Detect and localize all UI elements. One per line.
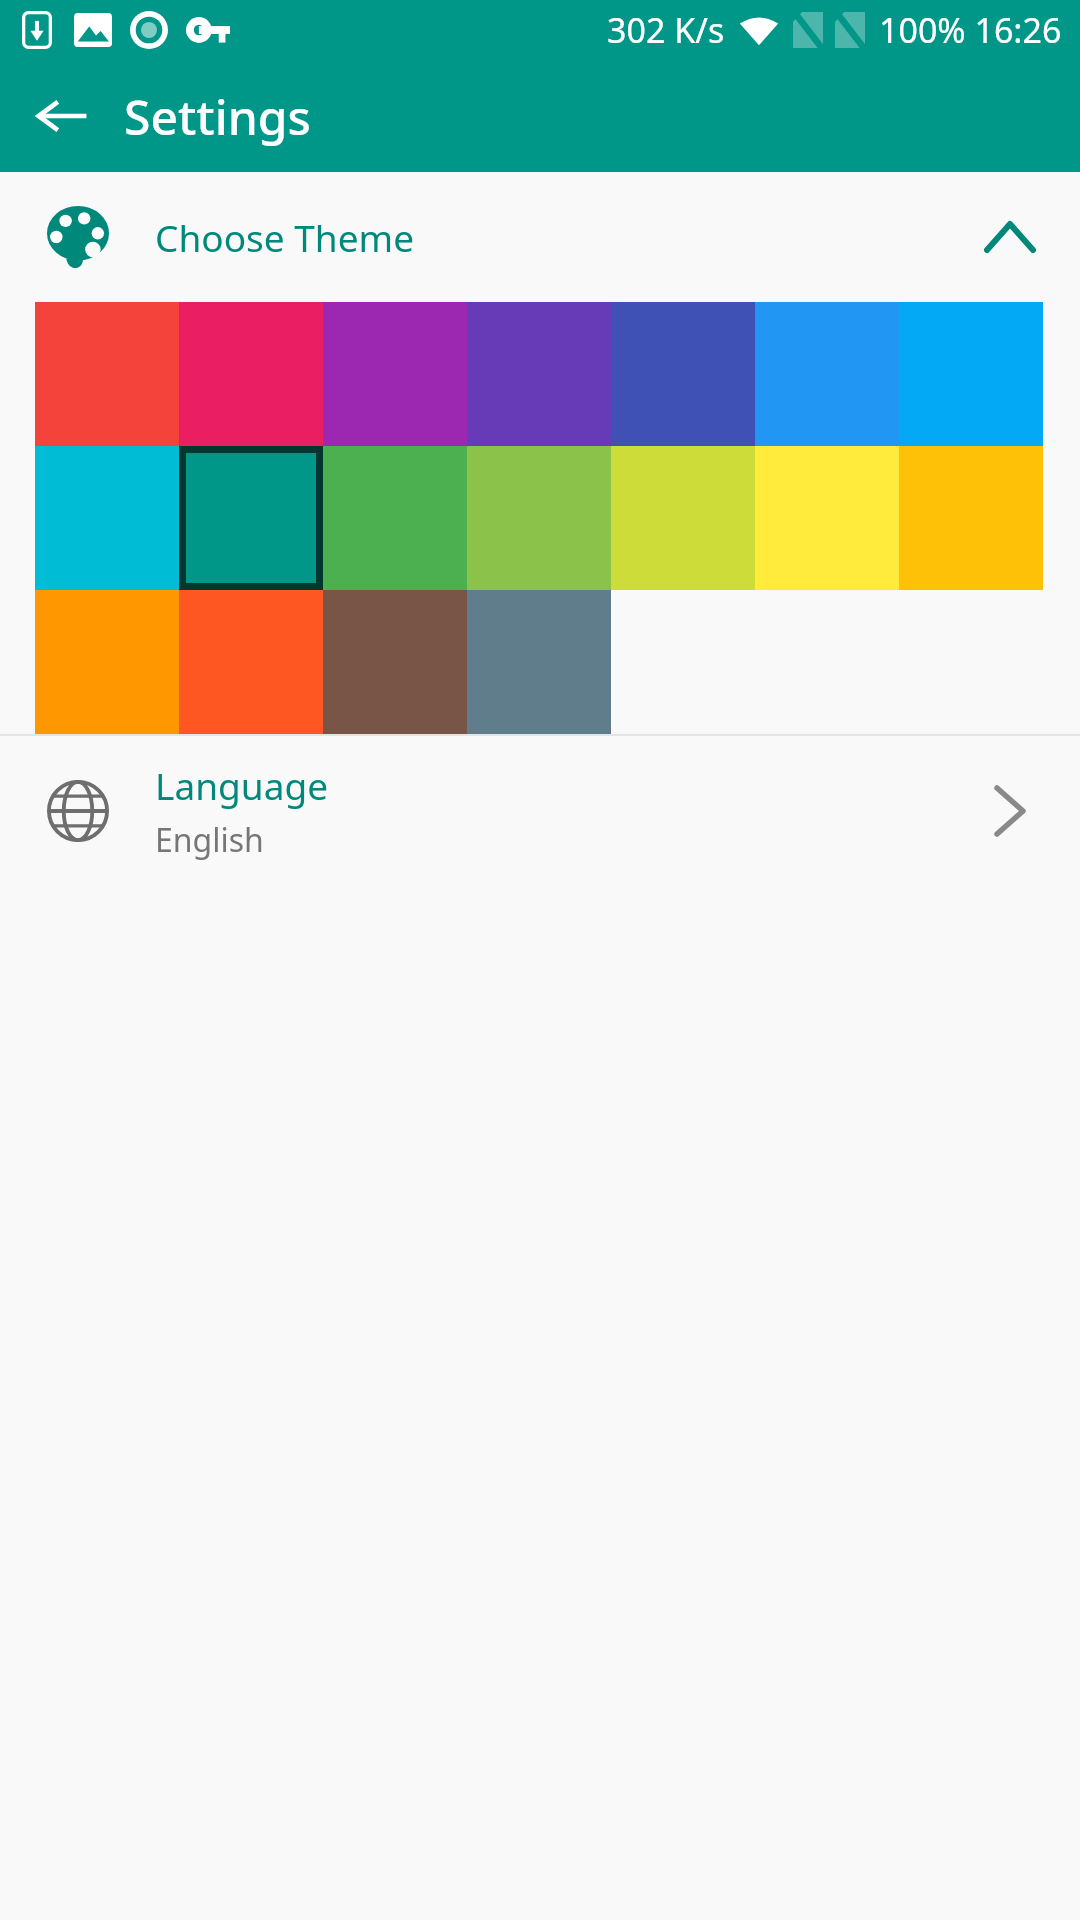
staticText: Settings [124, 84, 311, 149]
button[interactable]: Choose language [968, 769, 1052, 853]
staticText: Language [155, 760, 329, 810]
staticText: Choose Theme [155, 212, 414, 262]
button[interactable]: Theme colour [179, 446, 323, 590]
button[interactable]: Back [16, 70, 108, 162]
button[interactable]: Language [0, 736, 1080, 886]
staticText: English [155, 818, 264, 862]
button[interactable]: Collapse theme section [968, 195, 1052, 279]
staticText: 100% 16:26 [879, 7, 1062, 53]
button[interactable]: Choose Theme [0, 172, 1080, 302]
staticText: 302 K/s [607, 7, 725, 53]
